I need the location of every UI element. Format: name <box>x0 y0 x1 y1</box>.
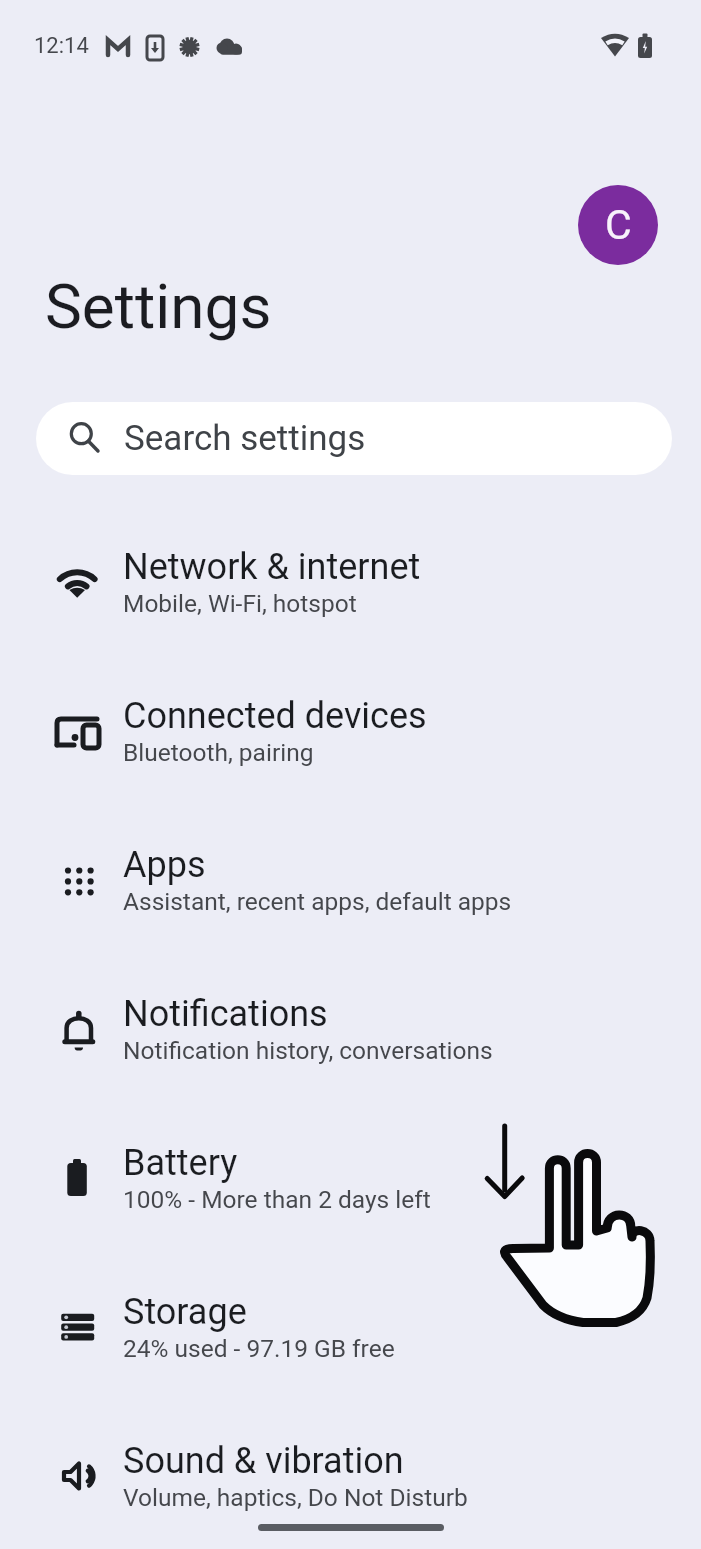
staticText: Assistant, recent apps, default apps <box>123 887 512 916</box>
staticText: Bluetooth, pairing <box>123 738 314 767</box>
staticText: Notification history, conversations <box>123 1036 493 1065</box>
button[interactable] <box>0 1123 701 1272</box>
button[interactable] <box>0 1272 701 1421</box>
staticText: Mobile, Wi-Fi, hotspot <box>123 589 357 618</box>
button[interactable]: C <box>578 185 658 265</box>
staticText: 100% - More than 2 days left <box>123 1185 431 1214</box>
staticText: Network & internet <box>123 546 421 588</box>
staticText: Apps <box>123 844 206 886</box>
staticText: C <box>605 201 632 249</box>
staticText: Sound & vibration <box>123 1440 404 1482</box>
staticText: Search settings <box>124 418 366 459</box>
staticText: 12:14 <box>34 33 89 59</box>
button[interactable] <box>36 402 672 475</box>
button[interactable] <box>0 676 701 825</box>
button[interactable] <box>0 825 701 974</box>
button[interactable] <box>0 974 701 1123</box>
staticText: Settings <box>45 270 272 343</box>
button[interactable] <box>0 1421 701 1549</box>
staticText: Storage <box>123 1291 247 1333</box>
staticText: Notifications <box>123 993 328 1035</box>
button[interactable] <box>0 527 701 676</box>
staticText: Battery <box>123 1142 238 1184</box>
staticText: Connected devices <box>123 695 427 737</box>
staticText: 24% used - 97.19 GB free <box>123 1334 395 1363</box>
staticText: Volume, haptics, Do Not Disturb <box>123 1483 468 1512</box>
